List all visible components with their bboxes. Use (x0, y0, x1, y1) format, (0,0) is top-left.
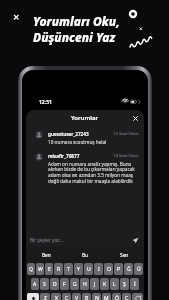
staticText: guesstuser_27243 (48, 131, 89, 137)
staticText: Bu (82, 252, 89, 259)
staticText: C (65, 295, 69, 300)
button[interactable]: F (60, 278, 69, 290)
staticText: J (94, 281, 96, 288)
staticText: T (67, 266, 70, 273)
staticText: I (98, 266, 100, 273)
button[interactable]: S (40, 278, 49, 290)
button[interactable]: I (94, 263, 103, 275)
staticText: Adam on numara analiz yapmış. Bunu akrke… (48, 161, 135, 185)
staticText: Sen (120, 252, 129, 259)
staticText: E (48, 266, 51, 273)
staticText: 14 Saat Önce (113, 153, 139, 159)
button[interactable]: Ü (134, 263, 143, 275)
staticText: Z (44, 295, 47, 300)
staticText: Ben (42, 252, 51, 259)
button[interactable]: C (62, 293, 71, 300)
button[interactable]: Ben (38, 250, 55, 261)
staticText: K (103, 281, 107, 288)
button[interactable]: K (100, 278, 109, 290)
button[interactable]: Ğ (124, 263, 133, 275)
staticText: V (75, 295, 79, 300)
staticText: 12 Saat Önce (113, 131, 139, 137)
button[interactable]: P (114, 263, 123, 275)
staticText: X (55, 295, 58, 300)
staticText: 12:51 (39, 99, 52, 106)
button[interactable]: Z (40, 293, 50, 300)
staticText: Ü (137, 266, 141, 273)
button[interactable]: N (92, 293, 101, 300)
button[interactable]: B (82, 293, 91, 300)
button[interactable]: Kapat (131, 114, 140, 123)
button[interactable]: Ö (112, 293, 121, 300)
button[interactable]: Ş (120, 278, 129, 290)
button[interactable]: Bu (78, 250, 93, 261)
button[interactable]: A (31, 278, 39, 290)
button[interactable]: Y (74, 263, 83, 275)
button[interactable]: R (54, 263, 63, 275)
other: Gönder (132, 237, 139, 244)
button[interactable]: Bir şeyler yaz... (30, 233, 139, 247)
button[interactable]: Shift (27, 293, 39, 300)
staticText: Q (29, 266, 33, 273)
staticText: A (33, 281, 37, 288)
staticText: F (63, 281, 66, 288)
staticText: M (104, 295, 109, 300)
staticText: 10 numara scoutmuş helal (48, 139, 107, 145)
staticText: Ğ (127, 266, 131, 273)
button[interactable]: T (64, 263, 73, 275)
staticText: Y (77, 266, 80, 273)
button[interactable]: D (50, 278, 59, 290)
button[interactable]: H (80, 278, 89, 290)
staticText: S (43, 281, 46, 288)
button[interactable]: O (104, 263, 113, 275)
staticText: R (57, 266, 61, 273)
staticText: misafir_70877 (48, 153, 80, 159)
staticText: U (87, 266, 91, 273)
staticText: Yorumları Oku, (33, 13, 120, 29)
button[interactable]: G (70, 278, 79, 290)
staticText: B (85, 295, 89, 300)
staticText: Yorumlar (71, 114, 99, 122)
staticText: P (117, 266, 121, 273)
button[interactable]: İ (130, 278, 139, 290)
button[interactable]: L (110, 278, 119, 290)
button[interactable]: X (51, 293, 61, 300)
staticText: L (113, 281, 116, 288)
staticText: Ç (125, 295, 129, 300)
staticText: N (95, 295, 99, 300)
button[interactable]: W (36, 263, 44, 275)
staticText: Ö (115, 295, 119, 300)
button[interactable]: Ç (122, 293, 131, 300)
staticText: D (53, 281, 57, 288)
staticText: H (83, 281, 87, 288)
staticText: Ş (123, 281, 126, 288)
staticText: W (38, 266, 43, 273)
button[interactable]: J (90, 278, 99, 290)
staticText: İ (134, 281, 136, 288)
staticText: Düşünceni Yaz (33, 29, 116, 45)
staticText: Bir şeyler yaz... (30, 237, 64, 244)
button[interactable]: Q (27, 263, 35, 275)
button[interactable]: E (45, 263, 53, 275)
button[interactable]: U (84, 263, 93, 275)
button[interactable]: M (102, 293, 111, 300)
staticText: G (73, 281, 77, 288)
button[interactable]: Sil (132, 293, 143, 300)
button[interactable]: Sen (116, 250, 133, 261)
button[interactable]: V (72, 293, 81, 300)
staticText: O (107, 266, 111, 273)
